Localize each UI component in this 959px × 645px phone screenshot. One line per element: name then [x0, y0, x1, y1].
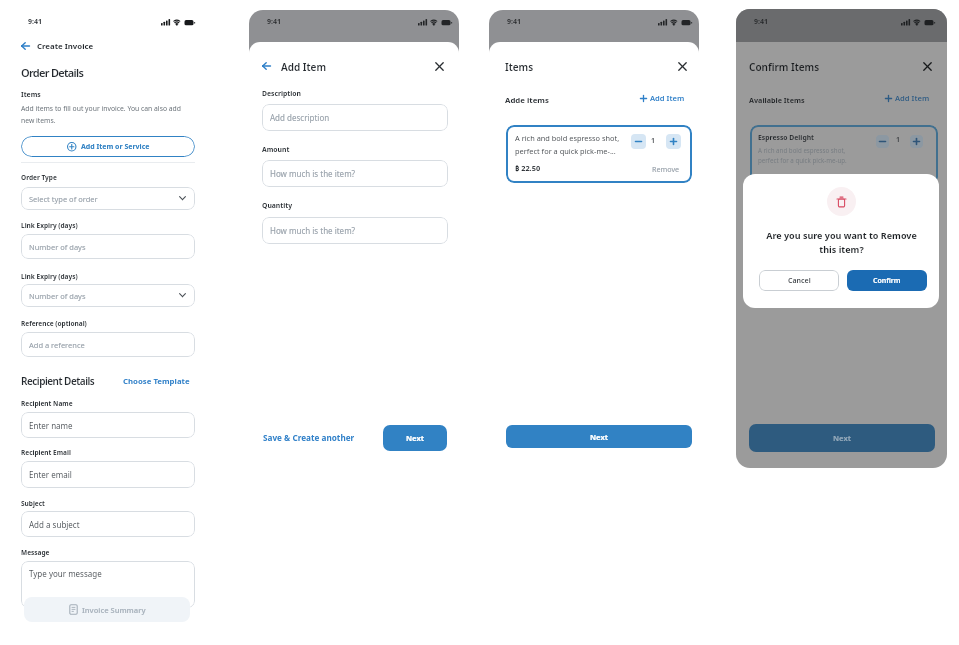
staticText: Confirm	[873, 276, 901, 286]
button[interactable]	[21, 42, 30, 50]
staticText: Order Type	[21, 173, 57, 182]
button[interactable]: How much is the item?	[262, 217, 448, 244]
staticText: 1	[651, 136, 656, 146]
staticText: Subject	[21, 499, 45, 508]
staticText: 9:41	[754, 17, 768, 27]
staticText: 1	[896, 135, 901, 145]
button[interactable]	[262, 62, 271, 70]
button[interactable]	[678, 62, 687, 71]
button[interactable]: Add Item	[885, 93, 930, 103]
staticText: Link Expiry (days)	[21, 272, 78, 281]
button[interactable]	[631, 134, 646, 149]
staticText: Items	[505, 60, 534, 74]
button[interactable]	[666, 134, 681, 149]
staticText: How much is the item?	[270, 225, 356, 236]
staticText: 9:41	[28, 17, 42, 27]
staticText: Next	[833, 433, 852, 443]
button[interactable]	[910, 135, 923, 148]
button[interactable]: Invoice Summary	[24, 597, 190, 622]
button[interactable]: Next	[383, 425, 447, 451]
staticText: 9:41	[267, 17, 281, 27]
button[interactable]: Enter name	[21, 412, 195, 438]
staticText: Recipient Details	[21, 374, 95, 388]
button[interactable]: Number of days	[21, 234, 195, 259]
button[interactable]: Add Item or Service	[21, 136, 195, 157]
staticText: A rich and bold espresso shot, perfect f…	[758, 146, 847, 165]
button[interactable]	[876, 135, 889, 148]
button[interactable]	[923, 62, 932, 71]
button[interactable]: Choose Template	[123, 376, 190, 387]
staticText: Invoice Summary	[82, 605, 146, 615]
staticText: Create Invoice	[37, 41, 94, 52]
staticText: Items	[21, 90, 41, 99]
staticText: Available Items	[749, 95, 805, 105]
staticText: Description	[262, 89, 301, 98]
button[interactable]: Add description	[262, 104, 448, 131]
staticText: Amount	[262, 145, 290, 154]
staticText: A rich and bold espresso shot, perfect f…	[515, 133, 620, 156]
staticText: Enter name	[29, 420, 73, 431]
staticText: Add Item	[650, 93, 685, 103]
staticText: Add Item or Service	[81, 142, 150, 152]
staticText: Next	[590, 432, 609, 442]
button[interactable]: Type your message	[21, 561, 195, 608]
staticText: Add Item	[281, 60, 327, 74]
staticText: Confirm Items	[749, 60, 820, 74]
button[interactable]: Confirm	[847, 270, 927, 291]
staticText: Add items to fill out your invoice. You …	[21, 104, 181, 125]
button[interactable]: Remove	[652, 164, 680, 174]
button[interactable]: Select type of order	[21, 187, 195, 210]
staticText: Recipient Email	[21, 448, 71, 457]
staticText: Recipient Name	[21, 399, 73, 408]
staticText: Enter email	[29, 469, 72, 480]
staticText: Select type of order	[29, 194, 98, 204]
button[interactable]: Enter email	[21, 461, 195, 488]
button[interactable]: Next	[749, 424, 935, 452]
staticText: Cancel	[788, 276, 811, 286]
button[interactable]: Save & Create another	[263, 432, 355, 443]
staticText: 9:41	[507, 17, 521, 27]
button[interactable]: Add a subject	[21, 511, 195, 537]
staticText: Link Expiry (days)	[21, 221, 78, 230]
staticText: How much is the item?	[270, 168, 356, 179]
button[interactable]: Number of days	[21, 284, 195, 307]
staticText: Are you sure you want to Remove this ite…	[766, 229, 917, 255]
staticText: Reference (optional)	[21, 319, 87, 328]
staticText: Quantity	[262, 201, 293, 210]
staticText: Add a subject	[29, 519, 80, 530]
button[interactable]	[506, 125, 692, 183]
button[interactable]	[435, 62, 444, 71]
staticText: Add description	[270, 112, 330, 123]
button[interactable]: Next	[506, 425, 692, 448]
staticText: Add a reference	[29, 340, 85, 350]
button[interactable]: How much is the item?	[262, 160, 448, 187]
button[interactable]: Add a reference	[21, 332, 195, 357]
button[interactable]: Cancel	[759, 270, 839, 291]
staticText: Type your message	[29, 568, 102, 579]
staticText: Message	[21, 548, 50, 557]
staticText: Adde items	[505, 95, 549, 106]
staticText: ₿ 22.50	[515, 163, 541, 173]
staticText: Next	[406, 433, 425, 443]
button[interactable]: Add Item	[640, 93, 685, 103]
staticText: Order Details	[21, 65, 84, 80]
staticText: Add Item	[895, 93, 930, 103]
staticText: Number of days	[29, 291, 86, 301]
staticText: Espresso Delight	[758, 133, 815, 142]
staticText: Number of days	[29, 242, 86, 252]
